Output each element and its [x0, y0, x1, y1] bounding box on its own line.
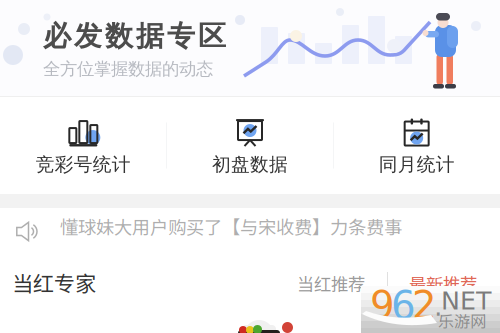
staticText: 当红专家: [12, 267, 96, 297]
staticText: 必发数据专区: [43, 19, 226, 53]
staticText: 全方位掌握数据的动态: [43, 58, 213, 80]
staticText: 9: [370, 283, 395, 328]
staticText: 最新推荐: [409, 271, 477, 296]
button[interactable]: 同月统计: [333, 95, 500, 196]
staticText: .: [434, 291, 442, 322]
staticText: 乐游网: [438, 309, 486, 332]
staticText: 初盘数据: [212, 153, 288, 176]
button[interactable]: 当红推荐: [291, 266, 371, 301]
staticText: 竞彩号统计: [36, 153, 131, 176]
staticText: 懂球妹大用户购买了【与宋收费】力条费事: [60, 213, 402, 239]
staticText: 6: [391, 283, 416, 328]
staticText: 当红推荐: [297, 271, 365, 296]
button[interactable]: 竞彩号统计: [0, 95, 167, 196]
staticText: 同月统计: [379, 153, 455, 176]
staticText: NET: [441, 286, 491, 315]
staticText: 2: [412, 283, 437, 328]
button[interactable]: 初盘数据: [167, 95, 333, 196]
button[interactable]: 最新推荐: [403, 266, 483, 301]
